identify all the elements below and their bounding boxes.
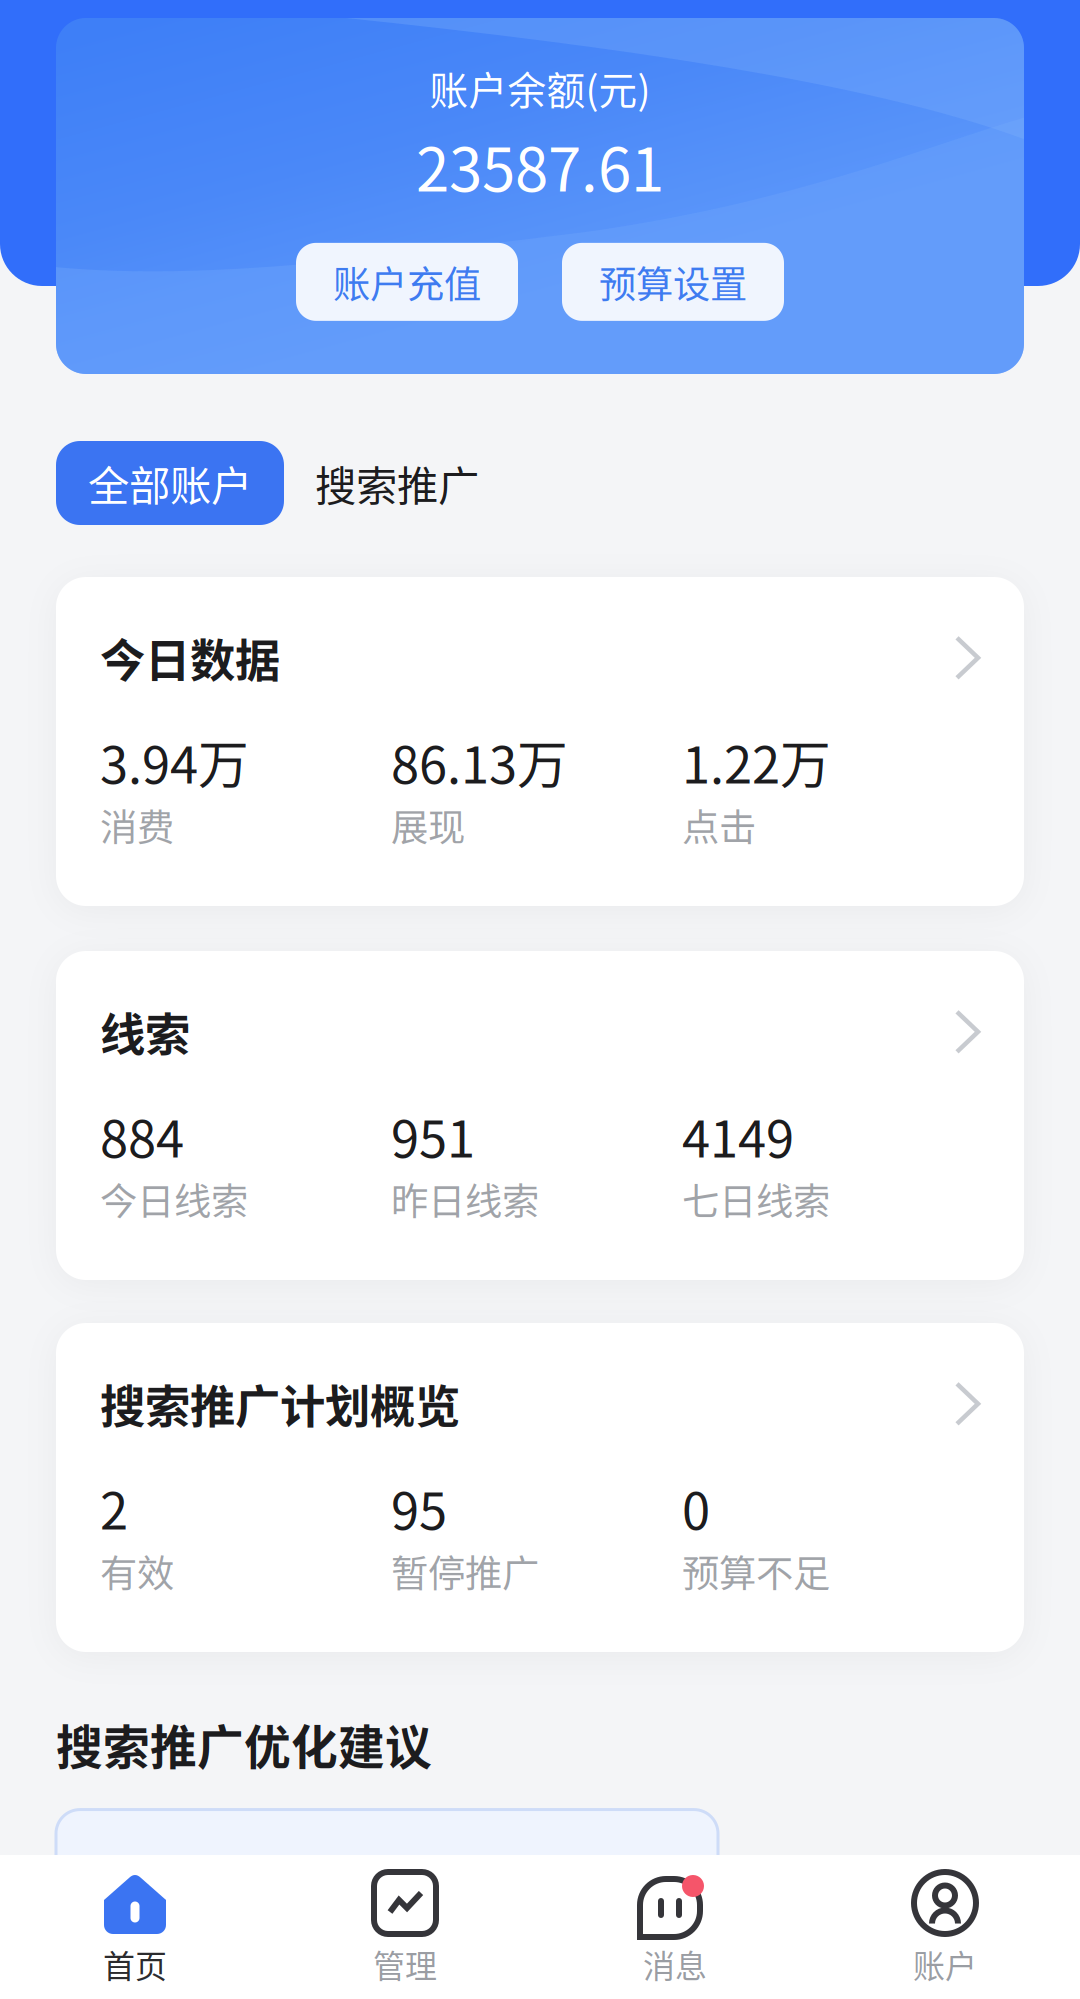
staticText: 今日线索 (100, 1172, 248, 1226)
staticText: 展现 (391, 798, 465, 852)
button[interactable]: 账户充值 (296, 243, 518, 321)
button[interactable]: 账户 (810, 1855, 1080, 1999)
staticText: 七日线索 (682, 1172, 830, 1226)
staticText: 23587.61 (416, 122, 664, 209)
staticText: 账户余额(元) (429, 60, 650, 116)
button[interactable]: 全部账户 (56, 441, 284, 525)
staticText: 95 (391, 1471, 447, 1544)
staticText: 有效 (100, 1544, 174, 1598)
staticText: 884 (100, 1099, 184, 1172)
staticText: 1.22万 (682, 725, 831, 798)
staticText: 管理 (373, 1941, 437, 1987)
staticText: 昨日线索 (391, 1172, 539, 1226)
staticText: 4149 (682, 1099, 794, 1172)
staticText: 消息 (643, 1941, 707, 1987)
staticText: 消费 (100, 798, 174, 852)
staticText: 首页 (103, 1941, 167, 1987)
staticText: 账户 (913, 1941, 977, 1987)
button[interactable]: 管理 (270, 1855, 540, 1999)
staticText: 搜索推广计划概览 (100, 1371, 460, 1437)
button[interactable]: 首页 (0, 1855, 270, 1999)
staticText: 搜索推广优化建议 (56, 1710, 432, 1778)
staticText: 3.94万 (100, 725, 249, 798)
button[interactable]: 预算设置 (562, 243, 784, 321)
staticText: 线索 (100, 999, 190, 1065)
staticText: 今日数据 (100, 625, 280, 691)
staticText: 951 (391, 1099, 475, 1172)
button[interactable]: 搜索推广计划概览 (56, 1323, 1024, 1652)
staticText: 暂停推广 (391, 1544, 539, 1598)
staticText: 搜索推广 (315, 453, 479, 513)
button[interactable]: 搜索推广 (284, 441, 510, 525)
staticText: 预算不足 (682, 1544, 830, 1598)
staticText: 0 (682, 1471, 710, 1544)
staticText: 2 (100, 1471, 128, 1544)
staticText: 86.13万 (391, 725, 568, 798)
button[interactable]: 线索 (56, 951, 1024, 1280)
button[interactable]: 今日数据 (56, 577, 1024, 906)
staticText: 预算设置 (599, 255, 747, 309)
button[interactable]: 消息 (540, 1855, 810, 1999)
staticText: 账户充值 (333, 255, 481, 309)
staticText: 点击 (682, 798, 756, 852)
staticText: 全部账户 (88, 453, 252, 513)
